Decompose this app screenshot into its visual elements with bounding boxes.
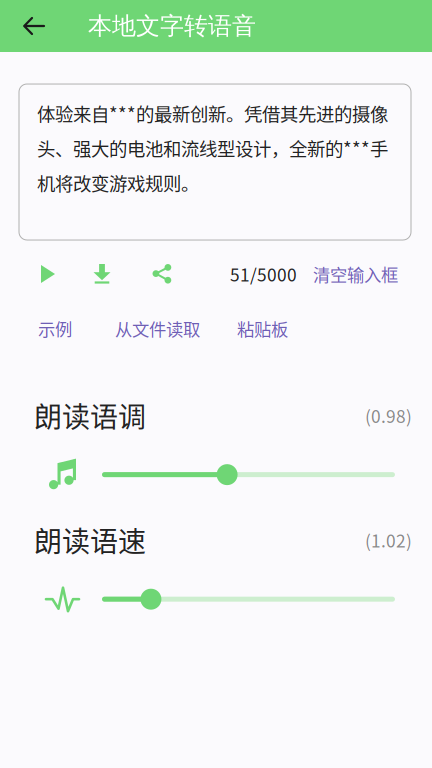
button[interactable]: Back xyxy=(0,0,68,52)
staticText: 朗读语调 xyxy=(34,395,146,436)
staticText: 示例 xyxy=(38,316,72,341)
button[interactable]: 粘贴板 xyxy=(227,310,298,347)
staticText: 体验来自***的最新创新。凭借其先进的摄像头、强大的电池和流线型设计，全新的**… xyxy=(37,100,388,196)
staticText: (1.02) xyxy=(365,527,412,552)
staticText: (0.98) xyxy=(365,403,412,428)
button[interactable]: Play xyxy=(24,256,72,292)
staticText: 51/5000 xyxy=(230,261,297,287)
staticText: 朗读语速 xyxy=(34,520,146,560)
button[interactable]: 清空输入框 xyxy=(297,261,398,287)
button[interactable]: 示例 xyxy=(28,310,82,347)
staticText: 本地文字转语音 xyxy=(88,11,256,41)
button[interactable]: Share xyxy=(132,256,192,292)
staticText: 清空输入框 xyxy=(313,261,398,287)
button[interactable]: 从文件读取 xyxy=(105,310,210,347)
staticText: 从文件读取 xyxy=(115,316,200,341)
button[interactable]: Download xyxy=(72,256,132,292)
staticText: 粘贴板 xyxy=(237,316,288,341)
